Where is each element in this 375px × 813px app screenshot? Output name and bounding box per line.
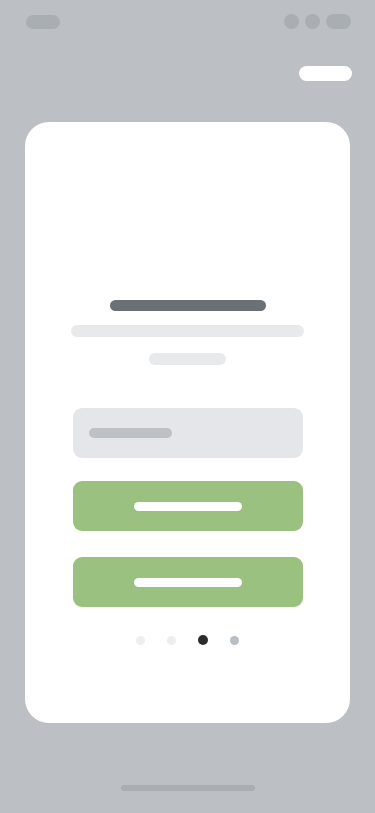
button[interactable]: Page 2 (167, 636, 176, 645)
button[interactable]: Page 4 (230, 636, 239, 645)
button[interactable]: Clock (26, 15, 60, 29)
button[interactable]: Primary action (73, 481, 303, 531)
button[interactable]: Page 3, current (198, 635, 208, 645)
button[interactable]: Action chip (299, 66, 352, 81)
button[interactable]: Page 1 (136, 636, 145, 645)
button[interactable]: Secondary action (73, 557, 303, 607)
other: Signal (284, 14, 299, 29)
button[interactable]: Text field (73, 408, 303, 458)
other: Battery (326, 14, 351, 29)
other: Wi-Fi (305, 14, 320, 29)
